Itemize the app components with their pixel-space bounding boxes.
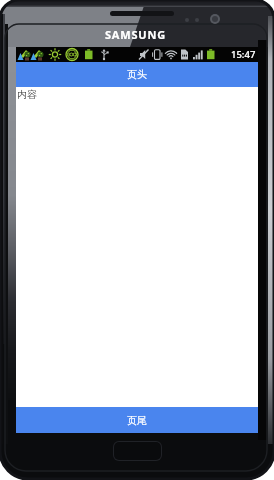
staticText: SAMSUNG [105, 27, 166, 42]
button[interactable]: 页尾 [16, 407, 258, 433]
button[interactable]: Home [113, 441, 162, 461]
staticText: 内容 [17, 88, 37, 101]
staticText: 15:47 [231, 48, 256, 61]
staticText: 页头 [127, 68, 147, 81]
button[interactable]: 页头 [16, 62, 258, 87]
staticText: 页尾 [127, 414, 147, 427]
